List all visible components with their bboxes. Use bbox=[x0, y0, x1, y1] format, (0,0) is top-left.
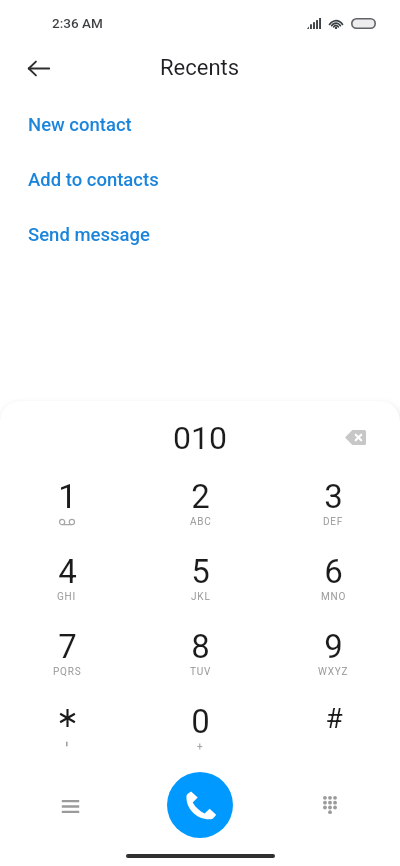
staticText: 9 bbox=[324, 627, 343, 666]
button[interactable]: 6 bbox=[267, 536, 400, 611]
staticText: WXYZ bbox=[318, 666, 349, 678]
staticText: + bbox=[197, 741, 204, 753]
button[interactable]: Send message bbox=[0, 207, 400, 262]
staticText: GHI bbox=[57, 591, 77, 603]
button[interactable]: 3 bbox=[267, 461, 400, 536]
button[interactable]: # bbox=[267, 686, 400, 761]
button[interactable]: 8 bbox=[134, 611, 267, 686]
staticText: 5 bbox=[191, 552, 210, 591]
button[interactable]: Dialpad bbox=[310, 785, 350, 825]
button[interactable]: 9 bbox=[267, 611, 400, 686]
button[interactable] bbox=[0, 686, 134, 761]
button[interactable]: Backspace bbox=[336, 418, 374, 456]
button[interactable]: Menu bbox=[50, 785, 90, 825]
staticText: DEF bbox=[323, 516, 344, 528]
staticText: PQRS bbox=[53, 666, 82, 678]
staticText: Add to contacts bbox=[28, 169, 159, 191]
button[interactable]: New contact bbox=[0, 97, 400, 152]
staticText: 0 bbox=[191, 702, 210, 741]
staticText: 7 bbox=[58, 627, 77, 666]
button[interactable]: 0 bbox=[134, 686, 267, 761]
staticText: # bbox=[325, 702, 343, 735]
staticText: Send message bbox=[28, 224, 150, 246]
staticText: TUV bbox=[190, 666, 212, 678]
staticText: 2 bbox=[191, 477, 210, 516]
button[interactable]: 4 bbox=[0, 536, 134, 611]
staticText: 4 bbox=[58, 552, 77, 591]
staticText: New contact bbox=[28, 114, 132, 136]
button[interactable]: Add to contacts bbox=[0, 152, 400, 207]
staticText: JKL bbox=[191, 591, 211, 603]
staticText: ABC bbox=[190, 516, 212, 528]
button[interactable]: 5 bbox=[134, 536, 267, 611]
staticText: 2:36 AM bbox=[52, 15, 103, 31]
button[interactable]: Back bbox=[22, 51, 56, 85]
button[interactable]: 2 bbox=[134, 461, 267, 536]
button[interactable]: 7 bbox=[0, 611, 134, 686]
staticText: MNO bbox=[321, 591, 347, 603]
button[interactable]: 1 bbox=[0, 461, 134, 536]
staticText: 010 bbox=[173, 419, 227, 457]
staticText: 6 bbox=[324, 552, 343, 591]
button[interactable]: Call bbox=[167, 772, 233, 838]
staticText: 1 bbox=[58, 477, 77, 516]
staticText: 8 bbox=[191, 627, 210, 666]
staticText: Recents bbox=[160, 55, 240, 81]
staticText: 3 bbox=[324, 477, 343, 516]
